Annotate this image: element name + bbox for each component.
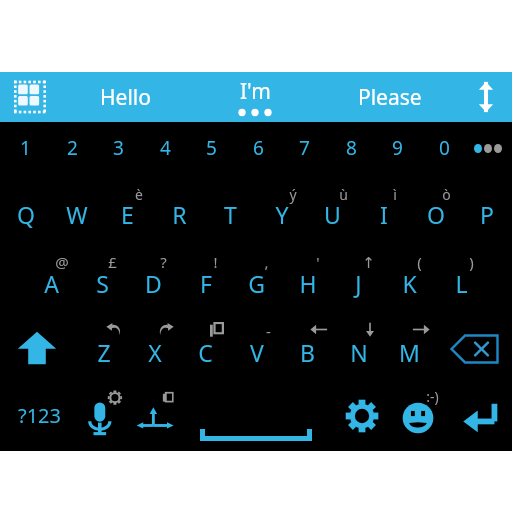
button[interactable]: A bbox=[26, 244, 77, 306]
button[interactable]: R bbox=[154, 178, 205, 238]
button[interactable]: K bbox=[384, 244, 435, 306]
button[interactable]: N bbox=[333, 312, 384, 376]
staticText: W bbox=[66, 199, 88, 230]
staticText: D bbox=[145, 268, 162, 299]
button[interactable]: 4 bbox=[142, 122, 188, 174]
staticText: - bbox=[266, 321, 271, 341]
button[interactable]: Backspace bbox=[440, 312, 510, 376]
button[interactable]: Z bbox=[78, 312, 129, 376]
button[interactable]: Voice input bbox=[78, 378, 130, 448]
staticText: ( bbox=[417, 252, 422, 272]
button[interactable]: X bbox=[129, 312, 180, 376]
staticText: K bbox=[402, 268, 417, 299]
staticText: :-) bbox=[426, 387, 439, 406]
staticText: B bbox=[300, 337, 315, 368]
button[interactable]: Hello bbox=[70, 72, 180, 122]
button[interactable]: Settings bbox=[334, 378, 390, 448]
button[interactable]: Emoji bbox=[388, 378, 448, 448]
button[interactable]: G bbox=[231, 244, 282, 306]
staticText: è bbox=[135, 185, 143, 204]
staticText: 2 bbox=[67, 135, 78, 161]
button[interactable]: P bbox=[461, 178, 512, 238]
staticText: O bbox=[427, 199, 445, 230]
staticText: L bbox=[455, 268, 468, 299]
button[interactable]: L bbox=[436, 244, 487, 306]
button[interactable]: More symbols bbox=[466, 122, 510, 174]
staticText: 8 bbox=[346, 135, 357, 161]
button[interactable]: W bbox=[51, 178, 102, 238]
button[interactable]: D bbox=[128, 244, 179, 306]
button[interactable]: J bbox=[333, 244, 384, 306]
button[interactable]: 5 bbox=[188, 122, 234, 174]
staticText: 9 bbox=[392, 135, 403, 161]
staticText: S bbox=[96, 268, 109, 299]
button[interactable]: Keyboard apps bbox=[8, 76, 52, 118]
staticText: M bbox=[399, 337, 420, 368]
staticText: 4 bbox=[160, 135, 171, 161]
staticText: U bbox=[324, 199, 341, 230]
button[interactable]: Space bbox=[186, 378, 326, 448]
button[interactable]: I'm bbox=[205, 72, 305, 122]
staticText: 7 bbox=[299, 135, 310, 161]
button[interactable]: 3 bbox=[95, 122, 141, 174]
button[interactable]: T bbox=[205, 178, 256, 238]
staticText: Y bbox=[275, 199, 289, 230]
staticText: 6 bbox=[253, 135, 264, 161]
staticText: I bbox=[380, 199, 388, 230]
button[interactable]: Enter bbox=[450, 378, 510, 448]
staticText: E bbox=[121, 199, 134, 230]
button[interactable]: Y bbox=[256, 178, 307, 238]
button[interactable]: O bbox=[410, 178, 461, 238]
staticText: Q bbox=[17, 199, 35, 230]
button[interactable]: 8 bbox=[328, 122, 374, 174]
button[interactable]: U bbox=[307, 178, 358, 238]
staticText: F bbox=[200, 268, 212, 299]
staticText: J bbox=[355, 268, 362, 299]
button[interactable]: 9 bbox=[374, 122, 420, 174]
button[interactable]: 7 bbox=[281, 122, 327, 174]
button[interactable]: Move cursor bbox=[130, 378, 182, 448]
staticText: ' bbox=[316, 252, 320, 272]
staticText: Z bbox=[97, 337, 111, 368]
button[interactable]: I bbox=[358, 178, 409, 238]
button[interactable]: Expand suggestions bbox=[462, 72, 510, 122]
staticText: 0 bbox=[439, 135, 450, 161]
staticText: T bbox=[224, 199, 237, 230]
staticText: C bbox=[198, 337, 213, 368]
button[interactable]: M bbox=[384, 312, 435, 376]
staticText: ý bbox=[289, 185, 297, 204]
staticText: ò bbox=[442, 185, 451, 204]
button[interactable]: C bbox=[180, 312, 231, 376]
button[interactable]: 1 bbox=[2, 122, 48, 174]
button[interactable]: ?123 bbox=[2, 378, 76, 448]
staticText: , bbox=[264, 252, 269, 272]
button[interactable]: B bbox=[282, 312, 333, 376]
button[interactable]: S bbox=[77, 244, 128, 306]
button[interactable]: V bbox=[231, 312, 282, 376]
staticText: P bbox=[480, 199, 494, 230]
button[interactable]: Q bbox=[0, 178, 51, 238]
staticText: ↑ bbox=[362, 254, 375, 271]
staticText: 3 bbox=[113, 135, 124, 161]
button[interactable]: F bbox=[180, 244, 231, 306]
button[interactable]: Shift bbox=[2, 312, 72, 376]
staticText: ! bbox=[213, 252, 218, 272]
staticText: 5 bbox=[206, 135, 217, 161]
button[interactable]: 6 bbox=[235, 122, 281, 174]
staticText: £ bbox=[108, 252, 117, 272]
staticText: @ bbox=[55, 252, 69, 272]
staticText: G bbox=[248, 268, 265, 299]
staticText: ì bbox=[393, 185, 397, 204]
staticText: X bbox=[148, 337, 162, 368]
staticText: R bbox=[172, 199, 187, 230]
button[interactable]: E bbox=[102, 178, 153, 238]
staticText: H bbox=[299, 268, 317, 299]
button[interactable]: H bbox=[282, 244, 333, 306]
button[interactable]: 2 bbox=[49, 122, 95, 174]
staticText: A bbox=[44, 268, 59, 299]
staticText: ) bbox=[469, 252, 474, 272]
staticText: Please bbox=[358, 83, 422, 112]
button[interactable]: Please bbox=[335, 72, 445, 122]
staticText: ?123 bbox=[18, 402, 61, 429]
button[interactable]: 0 bbox=[421, 122, 467, 174]
